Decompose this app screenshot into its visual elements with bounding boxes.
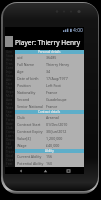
staticText: Cont — [6, 66, 14, 70]
staticText: £40,000 — [46, 143, 84, 148]
staticText: Arsenal — [46, 115, 84, 120]
staticText: Gen — [6, 50, 13, 54]
button[interactable]: Inju — [5, 70, 15, 74]
staticText: Traits — [6, 150, 15, 154]
button[interactable]: uid — [15, 54, 84, 61]
staticText: Sear — [6, 110, 13, 114]
staticText: Rate — [6, 122, 13, 126]
button[interactable]: Trai — [5, 86, 15, 90]
staticText: Left Foot — [46, 83, 84, 88]
button[interactable]: Repo — [5, 90, 15, 94]
staticText: France — [46, 90, 84, 95]
staticText: Full Name — [17, 62, 46, 67]
button[interactable]: Goal — [5, 154, 15, 158]
button[interactable]: Misc — [5, 114, 15, 118]
staticText: 36485 — [46, 55, 84, 60]
button[interactable]: Trns — [5, 62, 15, 66]
staticText: Senior National Team — [17, 104, 46, 109]
button[interactable]: Gen — [5, 50, 15, 54]
button[interactable]: Caps — [5, 158, 15, 162]
button[interactable]: Loan — [5, 134, 15, 138]
staticText: Potential Ability — [17, 161, 46, 166]
button[interactable]: Pace — [5, 166, 15, 167]
button[interactable]: Ability — [15, 149, 84, 153]
staticText: Pace — [6, 166, 14, 167]
button[interactable]: Back — [13, 167, 29, 174]
button[interactable]: Hist — [5, 58, 15, 62]
button[interactable]: Pref — [5, 146, 15, 150]
button[interactable]: Attr — [5, 78, 15, 82]
button[interactable]: Traits — [5, 150, 15, 154]
button[interactable]: Feet — [5, 162, 15, 166]
button[interactable]: Potential Ability — [15, 160, 84, 167]
staticText: Goal — [6, 154, 13, 158]
staticText: Pref — [6, 146, 13, 150]
staticText: Second Nationality — [17, 97, 46, 102]
staticText: Skil — [6, 142, 12, 146]
button[interactable]: Form — [5, 118, 15, 122]
staticText: Age — [17, 69, 46, 74]
staticText: Club — [6, 126, 13, 130]
button[interactable]: Personal details — [15, 50, 84, 54]
button[interactable]: Scou — [5, 74, 15, 78]
button[interactable]: Contract Start — [15, 121, 84, 128]
button[interactable]: Sett — [5, 102, 15, 106]
button[interactable]: Second Nationality — [15, 96, 84, 103]
staticText: 34 — [46, 69, 84, 74]
staticText: Player: Thierry Henry — [15, 38, 81, 47]
button[interactable]: Rate — [5, 122, 15, 126]
staticText: Wage — [17, 143, 46, 148]
staticText: Tact — [6, 82, 12, 86]
staticText: Repo — [6, 90, 14, 94]
button[interactable]: Current Ability — [15, 153, 84, 160]
staticText: Contract details — [38, 110, 61, 114]
button[interactable]: Wage — [15, 142, 84, 149]
button[interactable]: Skil — [5, 142, 15, 146]
button[interactable]: Med — [5, 94, 15, 98]
button[interactable]: Contract details — [15, 110, 84, 114]
staticText: Current Ability — [17, 154, 46, 159]
button[interactable]: Senior National Team — [15, 103, 84, 110]
button[interactable]: Camp — [5, 130, 15, 134]
staticText: 160 — [46, 161, 84, 166]
staticText: Sett — [6, 102, 12, 106]
button[interactable]: Club — [5, 126, 15, 130]
button[interactable]: Home — [37, 167, 53, 174]
button[interactable]: Full Name — [15, 61, 84, 68]
button[interactable]: Value[£] — [15, 135, 84, 142]
staticText: 30/Jun/2012 — [46, 129, 84, 134]
button[interactable]: Sear — [5, 110, 15, 114]
staticText: Value[£] — [17, 136, 46, 141]
staticText: Position — [17, 83, 46, 88]
staticText: Med — [6, 94, 13, 98]
button[interactable]: Cont — [5, 66, 15, 70]
staticText: Scou — [6, 74, 14, 78]
staticText: France — [46, 104, 84, 109]
staticText: Loan — [6, 134, 14, 138]
button[interactable]: Awa — [5, 98, 15, 102]
button[interactable]: Stats — [5, 54, 15, 58]
staticText: Inju — [6, 70, 12, 74]
button[interactable]: Contract Expiry — [15, 128, 84, 135]
button[interactable]: Position — [15, 82, 84, 89]
staticText: Hist — [6, 58, 12, 62]
button[interactable]: Depa — [5, 138, 15, 142]
staticText: Nationality — [17, 90, 46, 95]
button[interactable]: Tact — [5, 82, 15, 86]
button[interactable]: Nationality — [15, 89, 84, 96]
staticText: 4:00 — [73, 27, 83, 32]
button[interactable]: Recents — [60, 167, 76, 174]
staticText: Misc — [6, 114, 13, 118]
staticText: Contract Start — [17, 122, 46, 127]
button[interactable]: Club — [15, 114, 84, 121]
button[interactable]: Age — [15, 68, 84, 75]
button[interactable]: Note — [5, 106, 15, 110]
staticText: Attr — [6, 78, 12, 82]
staticText: Note — [6, 106, 14, 110]
staticText: Awa — [6, 98, 13, 102]
button[interactable]: Date of birth — [15, 75, 84, 82]
staticText: 1,200,000 — [46, 136, 84, 141]
staticText: Stats — [6, 54, 14, 58]
staticText: 01/Dec/2010 — [46, 122, 84, 127]
